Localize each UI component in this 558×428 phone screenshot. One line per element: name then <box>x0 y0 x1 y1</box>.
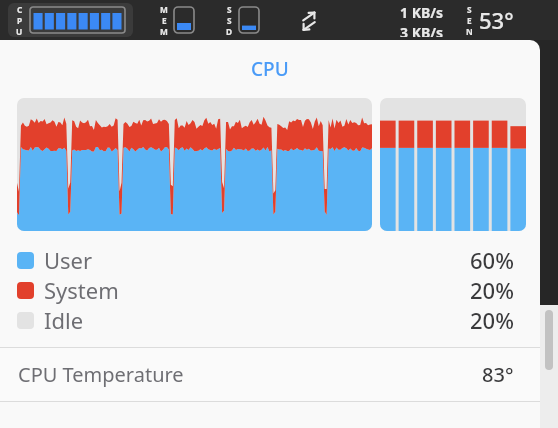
staticText: CPU <box>251 56 289 82</box>
button[interactable]: 1 KB/s <box>360 3 444 37</box>
staticText: 53° <box>479 5 514 35</box>
button[interactable] <box>380 98 526 231</box>
button[interactable]: Memory usage <box>160 3 194 37</box>
button[interactable]: CPU Temperature <box>0 348 540 401</box>
staticText: S <box>227 15 232 26</box>
button[interactable]: CPU <box>0 56 540 82</box>
staticText: 60% <box>470 245 514 275</box>
button[interactable]: System <box>0 275 540 305</box>
staticText: 20% <box>470 305 514 335</box>
staticText: 20% <box>470 275 514 305</box>
staticText: S <box>227 4 232 15</box>
button[interactable]: Idle <box>0 305 540 335</box>
staticText: N <box>466 26 473 37</box>
staticText: 83° <box>482 361 514 388</box>
staticText: System <box>44 275 119 305</box>
button[interactable]: User <box>0 245 540 275</box>
staticText: C <box>17 4 23 15</box>
staticText: P <box>17 15 23 26</box>
button[interactable]: CPU usage <box>16 3 125 37</box>
staticText: D <box>226 26 233 37</box>
button[interactable] <box>17 98 372 231</box>
staticText: M <box>160 4 168 15</box>
staticText: CPU Temperature <box>18 361 184 388</box>
staticText: S <box>467 4 472 15</box>
staticText: 1 KB/s <box>400 3 444 22</box>
button[interactable]: Network activity <box>296 8 322 34</box>
button[interactable]: Disk usage <box>226 3 259 37</box>
staticText: E <box>467 15 472 26</box>
staticText: 3 KB/s <box>400 23 444 37</box>
button[interactable]: Sensors temperature <box>466 3 514 37</box>
staticText: M <box>160 26 168 37</box>
staticText: E <box>162 15 167 26</box>
staticText: U <box>16 26 23 37</box>
staticText: User <box>44 245 93 275</box>
staticText: Idle <box>44 305 84 335</box>
